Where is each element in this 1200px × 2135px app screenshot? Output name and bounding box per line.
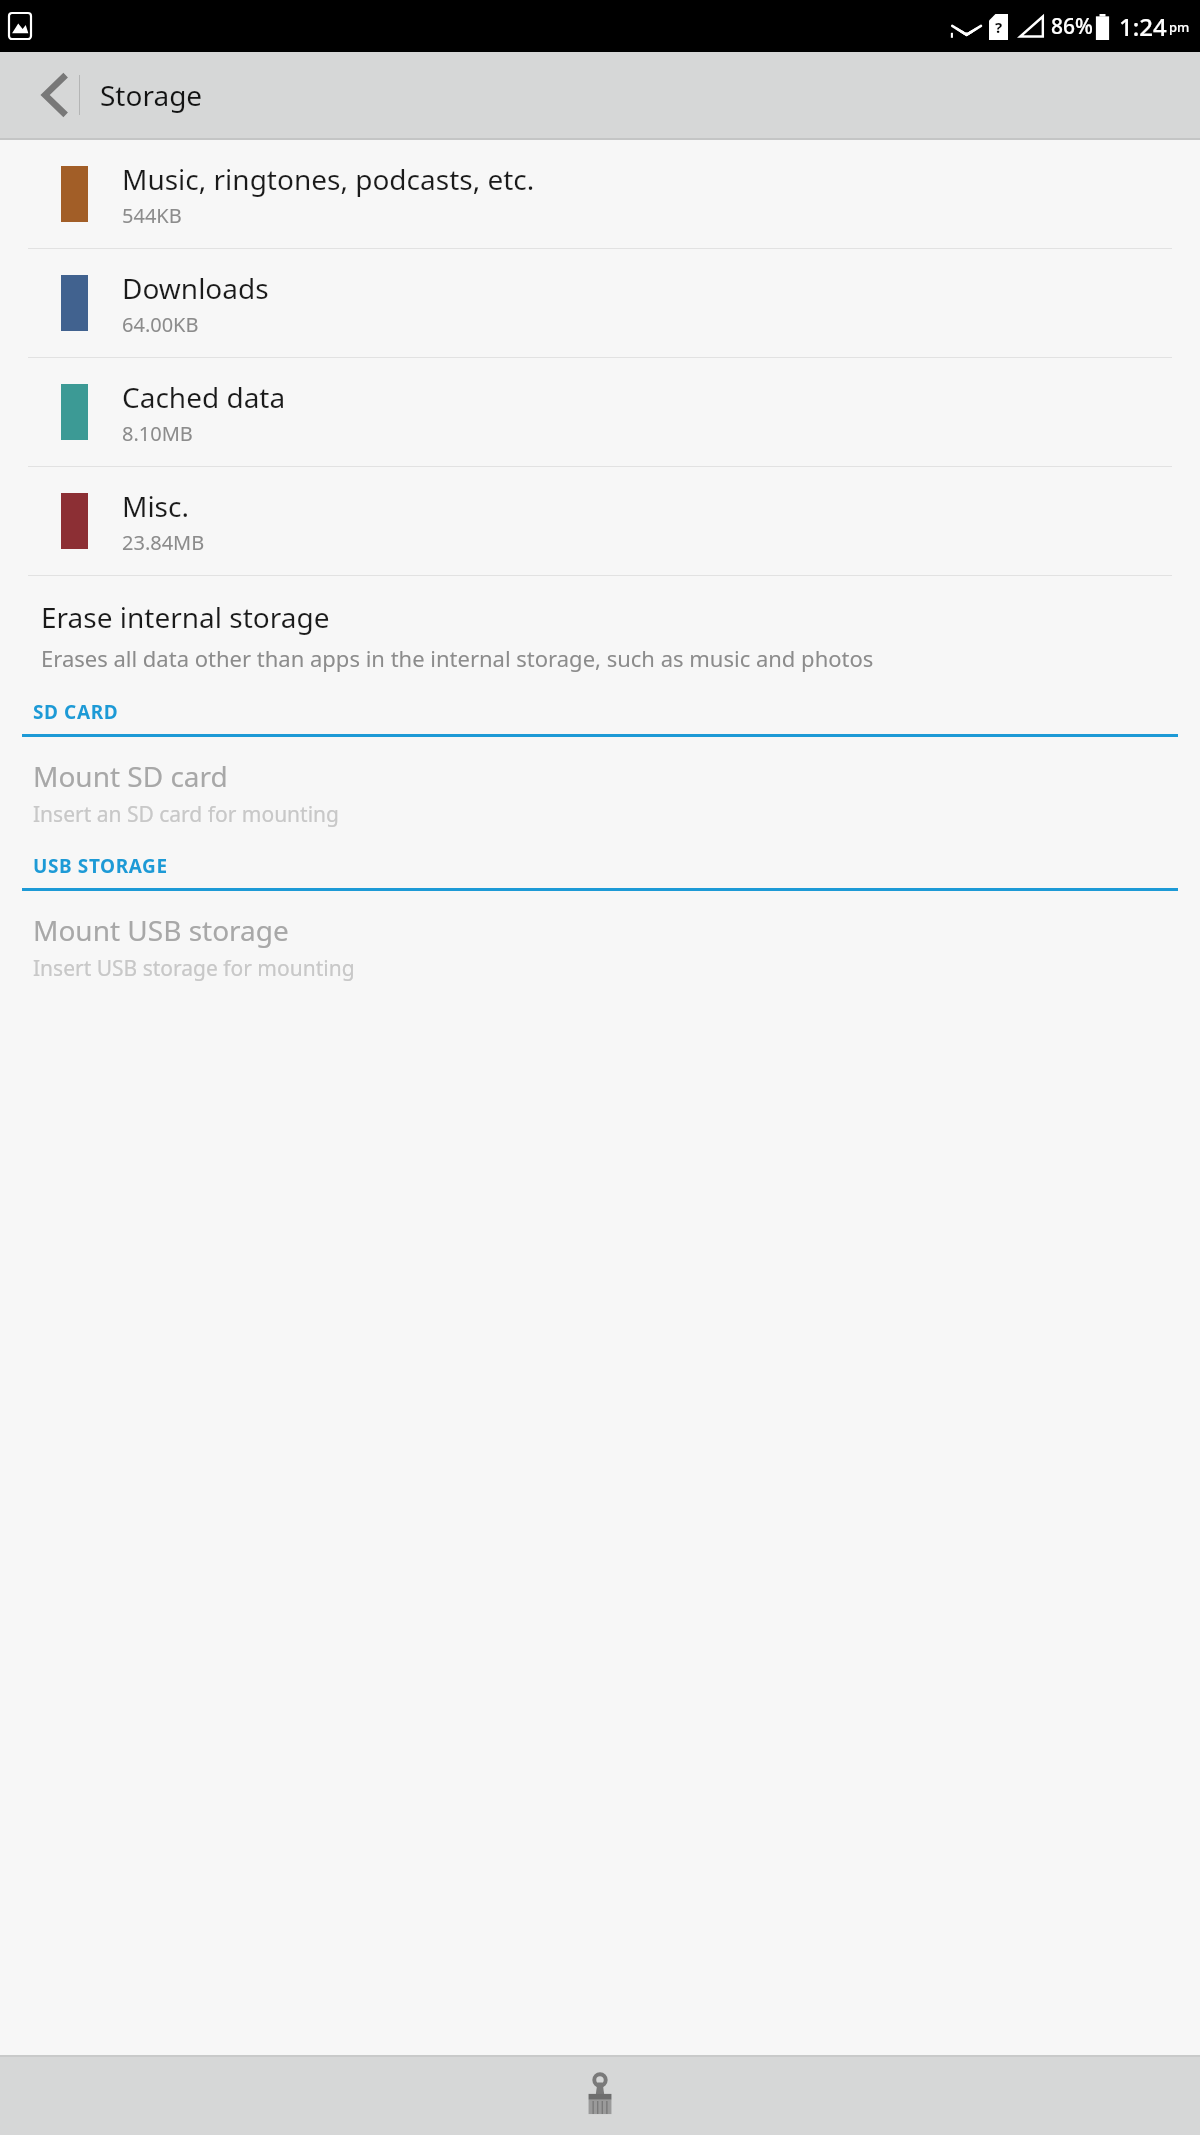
staticText: Downloads [122, 269, 269, 307]
button[interactable]: Clean up [555, 2057, 645, 2135]
staticText: 544KB [122, 202, 182, 229]
staticText: 64.00KB [122, 311, 199, 338]
button[interactable]: Erase internal storage [0, 576, 1200, 691]
button[interactable]: Mount SD card [0, 737, 1200, 845]
button[interactable]: Music, ringtones, podcasts, etc. [0, 140, 1200, 248]
staticText: Mount USB storage [33, 911, 289, 949]
button[interactable]: Misc. [0, 467, 1200, 575]
staticText: USB STORAGE [33, 853, 168, 879]
button[interactable]: Downloads [0, 249, 1200, 357]
staticText: Insert USB storage for mounting [33, 954, 355, 983]
button[interactable]: Mount USB storage [0, 891, 1200, 999]
staticText: Erases all data other than apps in the i… [41, 643, 874, 673]
staticText: Misc. [122, 487, 189, 525]
staticText: 1:24 [1119, 10, 1167, 43]
staticText: ? [995, 17, 1003, 37]
staticText: pm [1169, 18, 1190, 36]
staticText: Insert an SD card for mounting [33, 800, 339, 829]
staticText: Erase internal storage [41, 598, 330, 636]
staticText: Mount SD card [33, 757, 228, 795]
button[interactable]: Back [18, 52, 92, 138]
button[interactable]: Cached data [0, 358, 1200, 466]
staticText: 23.84MB [122, 529, 205, 556]
staticText: Storage [100, 76, 203, 114]
staticText: 8.10MB [122, 420, 193, 447]
staticText: 86% [1051, 12, 1093, 41]
staticText: Music, ringtones, podcasts, etc. [122, 160, 535, 198]
staticText: SD CARD [33, 699, 119, 725]
staticText: Cached data [122, 378, 286, 416]
